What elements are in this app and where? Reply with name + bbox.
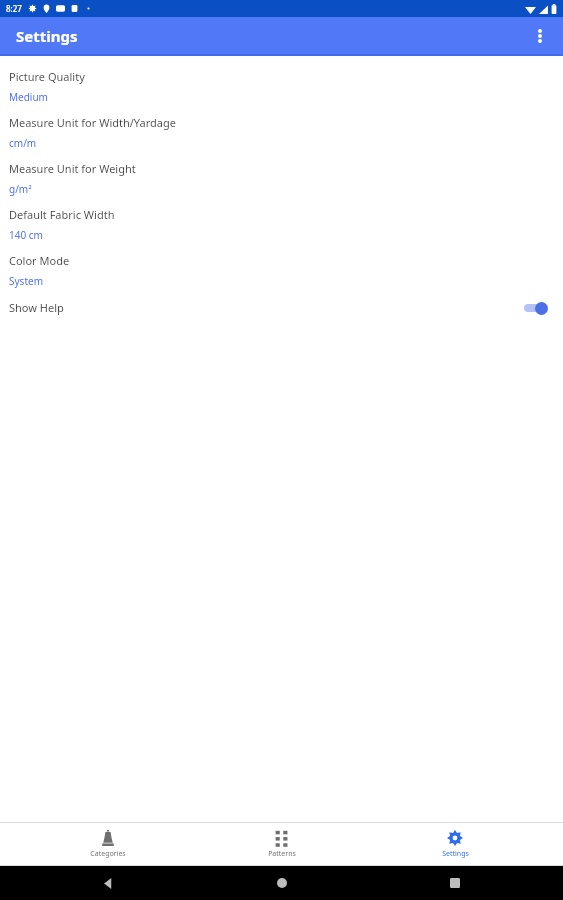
- staticText: Default Fabric Width: [9, 207, 115, 222]
- button[interactable]: Categories: [43, 827, 173, 862]
- button[interactable]: Home: [217, 866, 347, 900]
- staticText: Medium: [9, 90, 48, 104]
- staticText: Measure Unit for Width/Yardage: [9, 115, 176, 130]
- staticText: 140 cm: [9, 228, 43, 242]
- staticText: System: [9, 274, 43, 288]
- button[interactable]: Measure Unit for Width/Yardage: [0, 110, 563, 156]
- button[interactable]: Patterns: [217, 827, 347, 862]
- staticText: Picture Quality: [9, 69, 85, 84]
- staticText: Settings: [442, 849, 469, 859]
- staticText: Settings: [16, 26, 78, 46]
- staticText: cm/m: [9, 136, 37, 150]
- staticText: g/m²: [9, 182, 32, 196]
- button[interactable]: Default Fabric Width: [0, 202, 563, 248]
- button[interactable]: Picture Quality: [0, 64, 563, 110]
- staticText: Show Help: [9, 300, 64, 315]
- button[interactable]: Recent apps: [390, 866, 520, 900]
- button[interactable]: Color Mode: [0, 248, 563, 294]
- staticText: 8:27: [6, 3, 22, 14]
- staticText: Categories: [90, 849, 126, 859]
- button[interactable]: Show Help: [0, 294, 563, 321]
- staticText: Measure Unit for Weight: [9, 161, 136, 176]
- staticText: Color Mode: [9, 253, 70, 268]
- button[interactable]: Measure Unit for Weight: [0, 156, 563, 202]
- button[interactable]: Back: [43, 866, 173, 900]
- button[interactable]: More options: [525, 21, 555, 51]
- button[interactable]: Settings: [390, 827, 520, 862]
- staticText: Patterns: [268, 849, 296, 859]
